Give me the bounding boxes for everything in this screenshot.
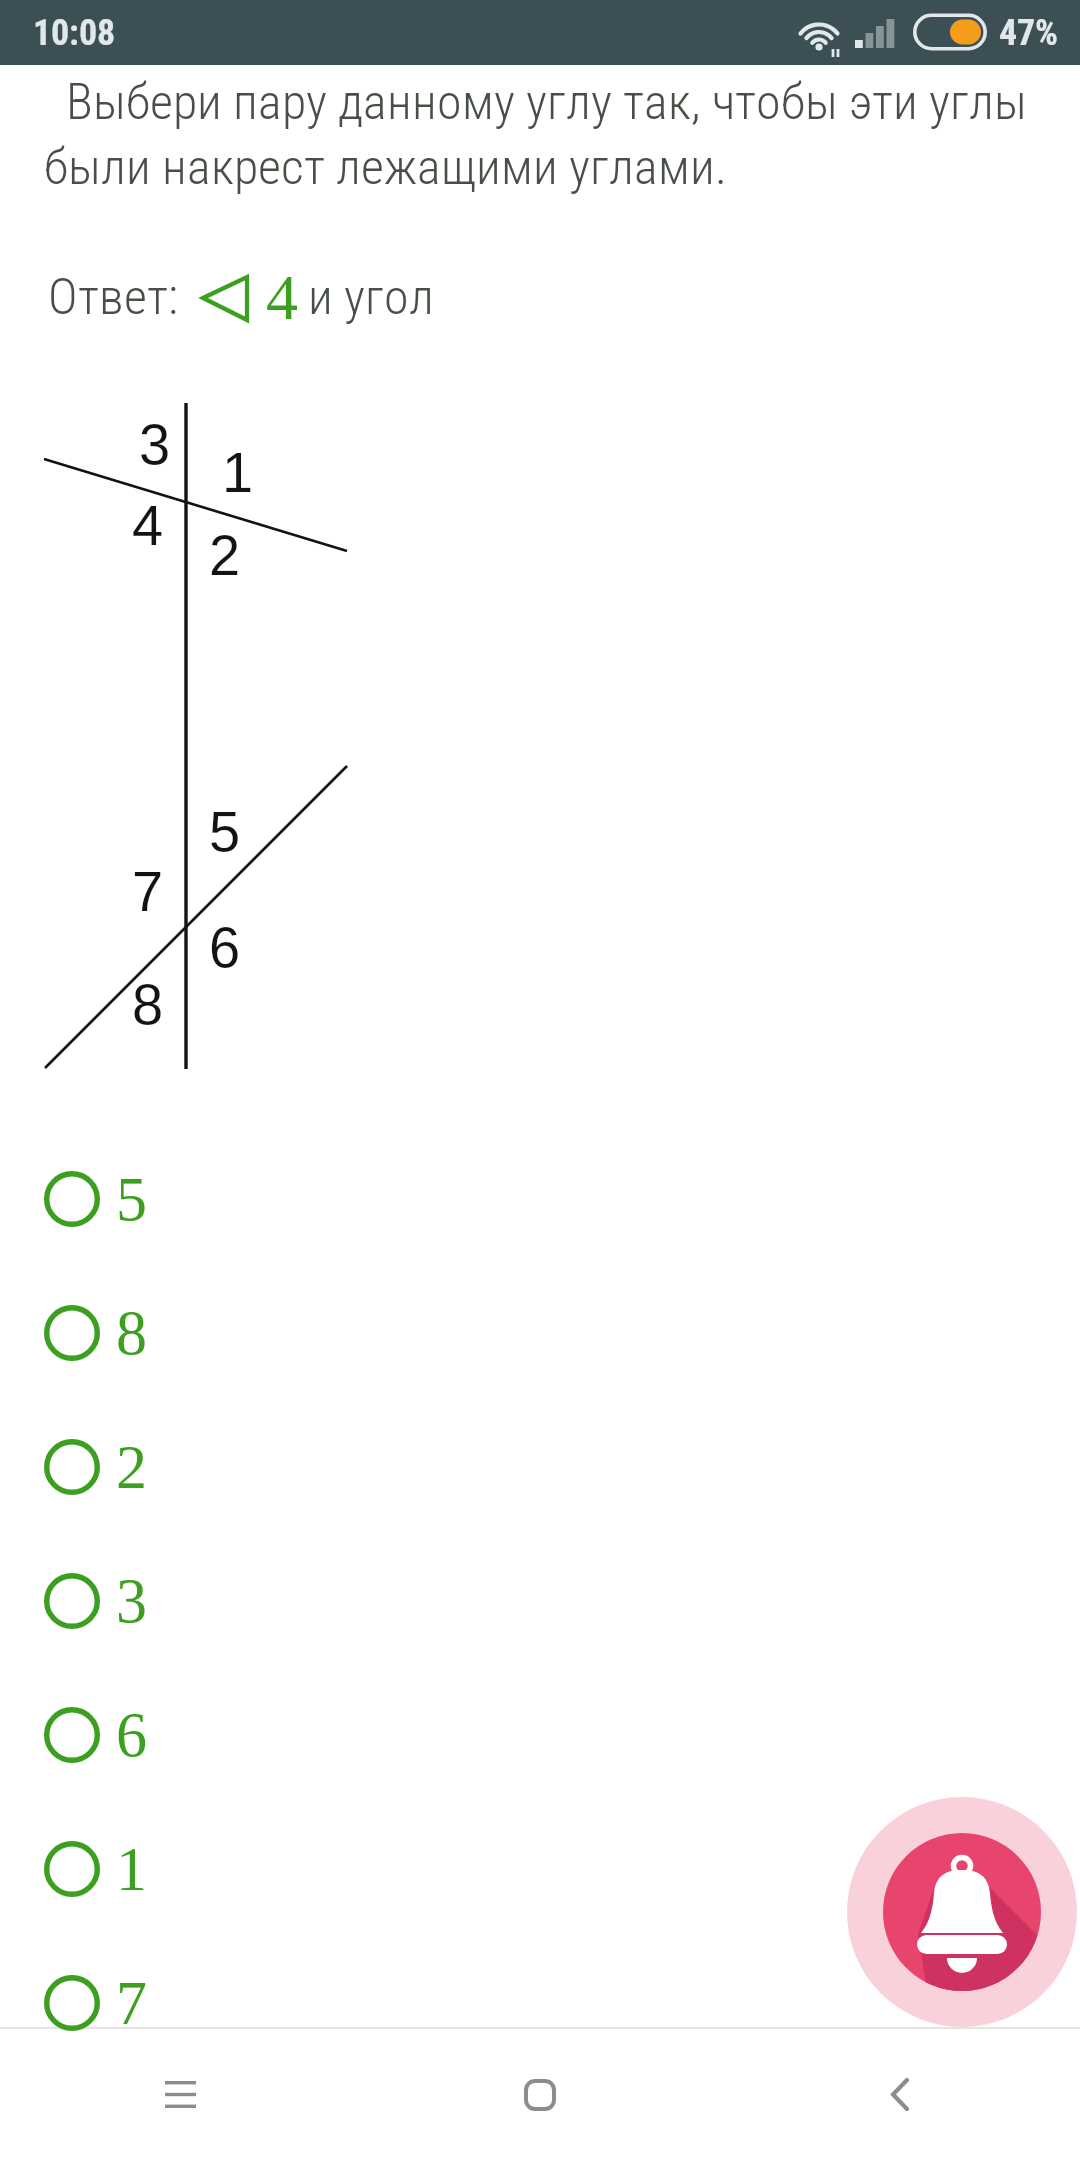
button[interactable]: Notifications xyxy=(847,1798,1077,2028)
button[interactable] xyxy=(0,1266,1080,1400)
button[interactable] xyxy=(0,1802,1080,1936)
button[interactable]: Home xyxy=(360,2029,720,2160)
button[interactable] xyxy=(0,1534,1080,1668)
button[interactable] xyxy=(0,1132,1080,1266)
button[interactable] xyxy=(0,1400,1080,1534)
button[interactable] xyxy=(0,1668,1080,1802)
button[interactable]: Back xyxy=(720,2029,1080,2160)
button[interactable] xyxy=(0,1936,1080,2070)
button[interactable]: Recent apps xyxy=(0,2029,360,2160)
